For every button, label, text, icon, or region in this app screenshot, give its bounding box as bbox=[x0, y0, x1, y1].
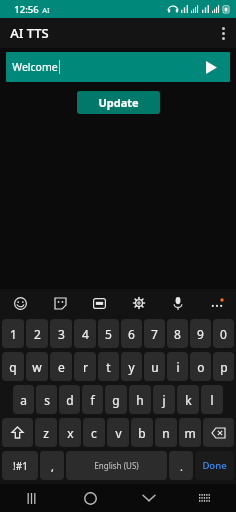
button[interactable]: 9 bbox=[190, 319, 211, 348]
staticText: t bbox=[106, 359, 111, 375]
staticText: 4 bbox=[82, 326, 89, 342]
button[interactable]: 6 bbox=[121, 319, 142, 348]
staticText: x bbox=[67, 425, 74, 441]
staticText: Welcome bbox=[12, 60, 58, 74]
button[interactable]: Done bbox=[195, 451, 234, 480]
staticText: s bbox=[44, 392, 50, 408]
button[interactable]: r bbox=[74, 352, 96, 381]
staticText: 8 bbox=[174, 326, 181, 342]
staticText: Done bbox=[202, 459, 227, 472]
button[interactable]: m bbox=[179, 418, 201, 447]
button[interactable]: 3 bbox=[50, 319, 72, 348]
button[interactable]: s bbox=[36, 385, 57, 414]
staticText: 3 bbox=[58, 326, 65, 342]
staticText: n bbox=[162, 425, 170, 441]
button[interactable]: Recent apps bbox=[18, 485, 44, 511]
button[interactable]: Hide keyboard bbox=[136, 485, 162, 511]
button[interactable]: GIF bbox=[80, 289, 119, 317]
staticText: j bbox=[162, 392, 166, 408]
button[interactable]: n bbox=[155, 418, 177, 447]
button[interactable]: v bbox=[107, 418, 129, 447]
staticText: English (US) bbox=[94, 460, 139, 471]
button[interactable]: t bbox=[98, 352, 119, 381]
staticText: 1 bbox=[10, 326, 17, 342]
button[interactable]: h bbox=[129, 385, 151, 414]
button[interactable]: l bbox=[201, 385, 223, 414]
staticText: r bbox=[83, 359, 88, 375]
button[interactable]: c bbox=[83, 418, 105, 447]
staticText: e bbox=[58, 359, 65, 375]
button[interactable]: g bbox=[105, 385, 127, 414]
staticText: a bbox=[20, 392, 27, 408]
button[interactable]: Home bbox=[77, 485, 103, 511]
button[interactable]: q bbox=[2, 352, 24, 381]
button[interactable]: b bbox=[131, 418, 153, 447]
staticText: 6 bbox=[128, 326, 135, 342]
staticText: AI TTS bbox=[10, 24, 49, 42]
staticText: p bbox=[220, 359, 228, 375]
staticText: y bbox=[128, 359, 135, 375]
button[interactable]: 4 bbox=[74, 319, 96, 348]
button[interactable]: o bbox=[190, 352, 211, 381]
button[interactable]: . bbox=[169, 451, 193, 480]
staticText: i bbox=[176, 359, 180, 375]
staticText: o bbox=[197, 359, 205, 375]
staticText: v bbox=[115, 425, 122, 441]
staticText: b bbox=[138, 425, 146, 441]
button[interactable]: 5 bbox=[98, 319, 119, 348]
staticText: f bbox=[90, 392, 95, 408]
staticText: !#1 bbox=[13, 459, 28, 473]
button[interactable]: Update bbox=[77, 91, 160, 114]
button[interactable]: Emoji bbox=[0, 289, 40, 317]
button[interactable]: Welcome bbox=[6, 52, 230, 82]
button[interactable]: p bbox=[213, 352, 234, 381]
staticText: m bbox=[184, 425, 196, 441]
staticText: 7 bbox=[151, 326, 158, 342]
button[interactable]: u bbox=[144, 352, 165, 381]
staticText: u bbox=[151, 359, 159, 375]
staticText: h bbox=[136, 392, 144, 408]
button[interactable]: More bbox=[197, 289, 236, 317]
button[interactable]: Backspace bbox=[203, 418, 234, 447]
button[interactable]: a bbox=[13, 385, 34, 414]
staticText: q bbox=[9, 359, 17, 375]
button[interactable]: k bbox=[177, 385, 199, 414]
staticText: g bbox=[112, 392, 120, 408]
button[interactable]: Settings bbox=[119, 289, 158, 317]
staticText: w bbox=[32, 359, 42, 375]
button[interactable]: Switch keyboard bbox=[192, 485, 218, 511]
button[interactable]: 1 bbox=[2, 319, 24, 348]
staticText: , bbox=[51, 459, 54, 474]
button[interactable]: , bbox=[40, 451, 64, 480]
button[interactable]: More options bbox=[210, 20, 236, 46]
button[interactable]: f bbox=[82, 385, 103, 414]
button[interactable]: 0 bbox=[213, 319, 234, 348]
staticText: 5 bbox=[105, 326, 112, 342]
button[interactable]: x bbox=[59, 418, 81, 447]
button[interactable]: j bbox=[153, 385, 175, 414]
button[interactable]: Stickers bbox=[40, 289, 80, 317]
button[interactable]: d bbox=[59, 385, 80, 414]
button[interactable]: i bbox=[167, 352, 188, 381]
button[interactable]: Voice input bbox=[158, 289, 197, 317]
button[interactable]: !#1 bbox=[2, 451, 38, 480]
button[interactable]: 7 bbox=[144, 319, 165, 348]
staticText: k bbox=[185, 392, 192, 408]
button[interactable]: 2 bbox=[26, 319, 48, 348]
button[interactable]: y bbox=[121, 352, 142, 381]
staticText: 9 bbox=[197, 326, 204, 342]
staticText: 2 bbox=[34, 326, 41, 342]
staticText: c bbox=[91, 425, 97, 441]
button[interactable]: z bbox=[35, 418, 57, 447]
button[interactable]: w bbox=[26, 352, 48, 381]
staticText: l bbox=[210, 392, 214, 408]
button[interactable]: 8 bbox=[167, 319, 188, 348]
staticText: z bbox=[43, 425, 49, 441]
button[interactable]: Shift bbox=[2, 418, 33, 447]
button[interactable]: e bbox=[50, 352, 72, 381]
staticText: Update bbox=[98, 95, 139, 110]
button[interactable]: Play bbox=[202, 58, 220, 76]
staticText: d bbox=[66, 392, 74, 408]
button[interactable]: English (US) bbox=[66, 451, 167, 480]
staticText: . bbox=[180, 459, 183, 474]
